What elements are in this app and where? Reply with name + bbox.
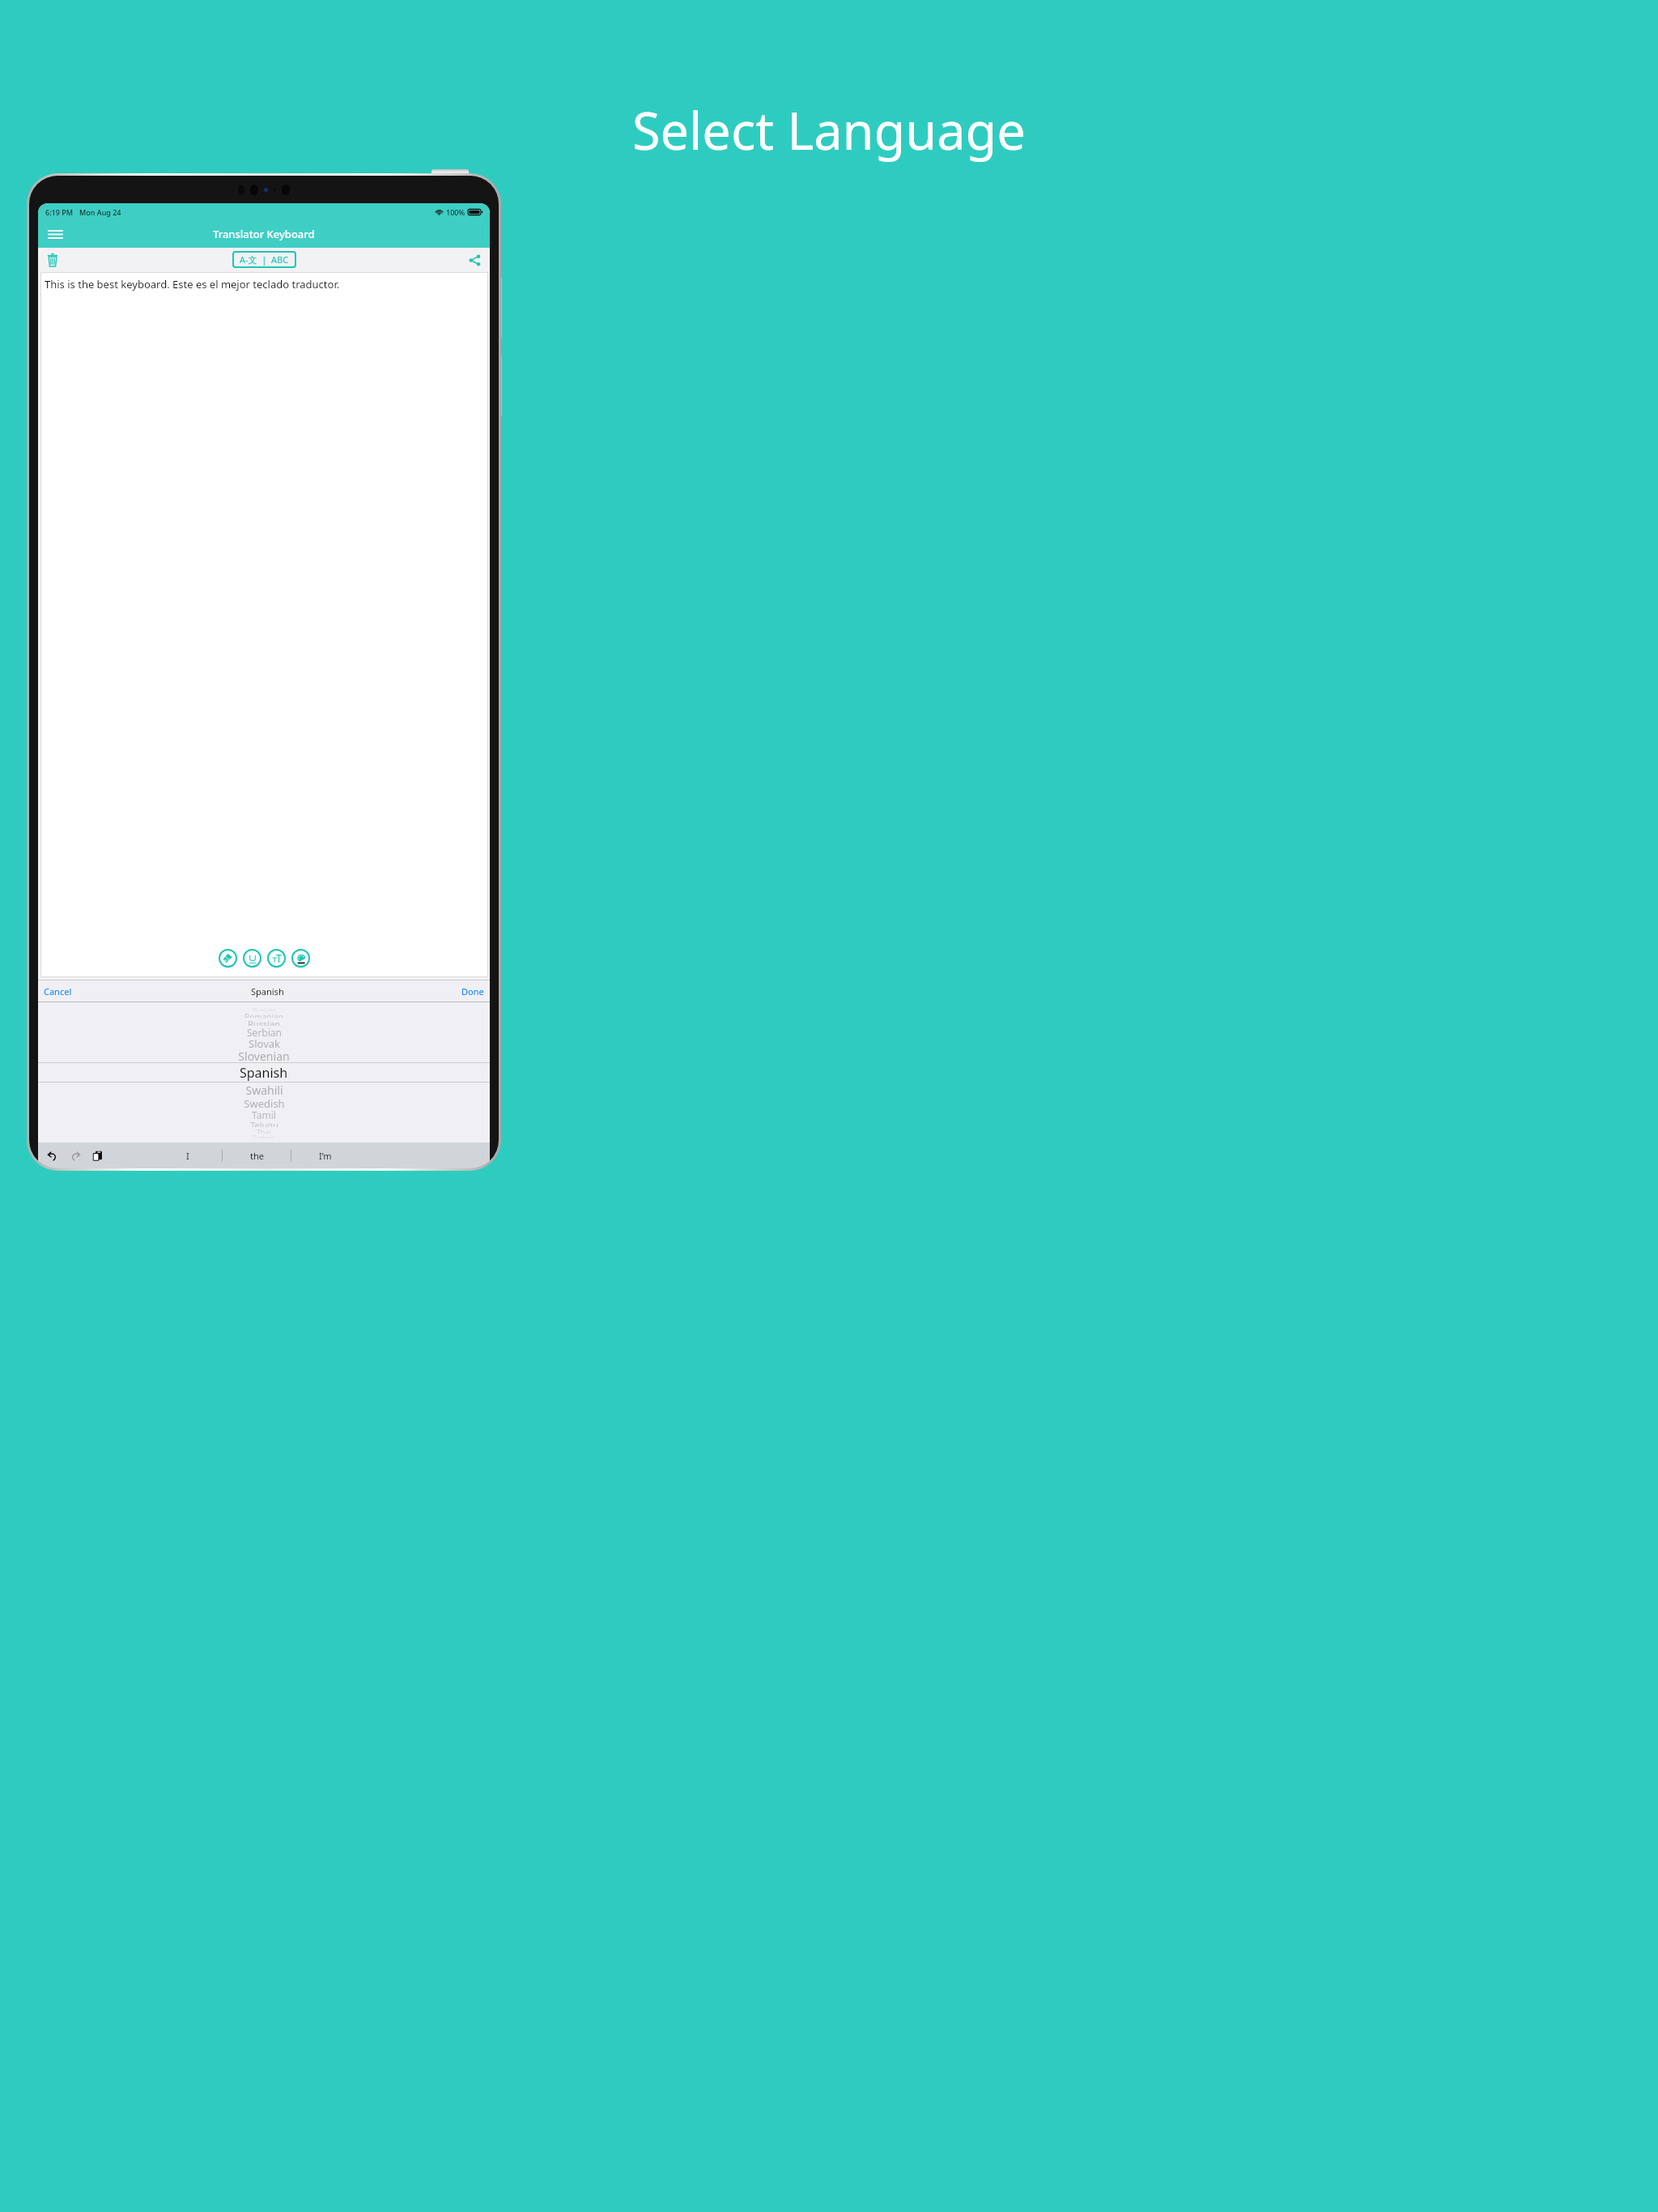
button[interactable]: Undo [45, 1149, 59, 1163]
button[interactable]: Underline [243, 949, 261, 968]
button[interactable]: Cancel [42, 982, 74, 1001]
staticText: Russian [248, 1018, 280, 1026]
staticText: This is the best keyboard. Este es el me… [45, 277, 340, 291]
staticText: Swahili [245, 1083, 283, 1096]
staticText: Tamil [252, 1108, 276, 1119]
staticText: Serbian [247, 1026, 282, 1036]
staticText: the [250, 1150, 264, 1162]
staticText: Spanish [251, 985, 284, 998]
button[interactable]: Paste [91, 1149, 104, 1163]
staticText: Spanish [240, 1064, 288, 1082]
staticText: Slovak [249, 1036, 280, 1049]
staticText: Translator Keyboard [213, 227, 315, 241]
staticText: Romanian [244, 1011, 283, 1018]
staticText: Mon Aug 24 [79, 207, 121, 217]
button[interactable]: I [153, 1142, 222, 1168]
staticText: Punjabi [253, 1006, 276, 1011]
staticText: 6:19 PM [45, 207, 73, 217]
staticText: Slovenian [238, 1049, 290, 1062]
button[interactable]: Color palette [291, 949, 310, 968]
button[interactable]: Share [463, 249, 486, 271]
staticText: I [186, 1150, 189, 1162]
button[interactable]: Clear text [41, 249, 64, 271]
staticText: Select Language [632, 96, 1026, 165]
button[interactable]: A-文 | ABC [240, 253, 289, 266]
staticText: Turkish [253, 1134, 275, 1138]
button[interactable]: Redo [68, 1149, 82, 1163]
staticText: I’m [319, 1150, 332, 1162]
button[interactable]: the [223, 1142, 291, 1168]
staticText: A-文 | ABC [240, 253, 289, 266]
button[interactable]: Text size [267, 949, 286, 968]
button[interactable]: Brush [219, 949, 237, 968]
staticText: Thai [257, 1127, 271, 1134]
button[interactable]: Menu [41, 220, 69, 248]
button[interactable]: Done [460, 982, 486, 1001]
button[interactable]: I’m [291, 1142, 359, 1168]
button[interactable]: Spanish [38, 1062, 490, 1083]
staticText: 100% [446, 207, 466, 217]
staticText: Telugu [250, 1119, 278, 1127]
staticText: Swedish [244, 1096, 285, 1108]
